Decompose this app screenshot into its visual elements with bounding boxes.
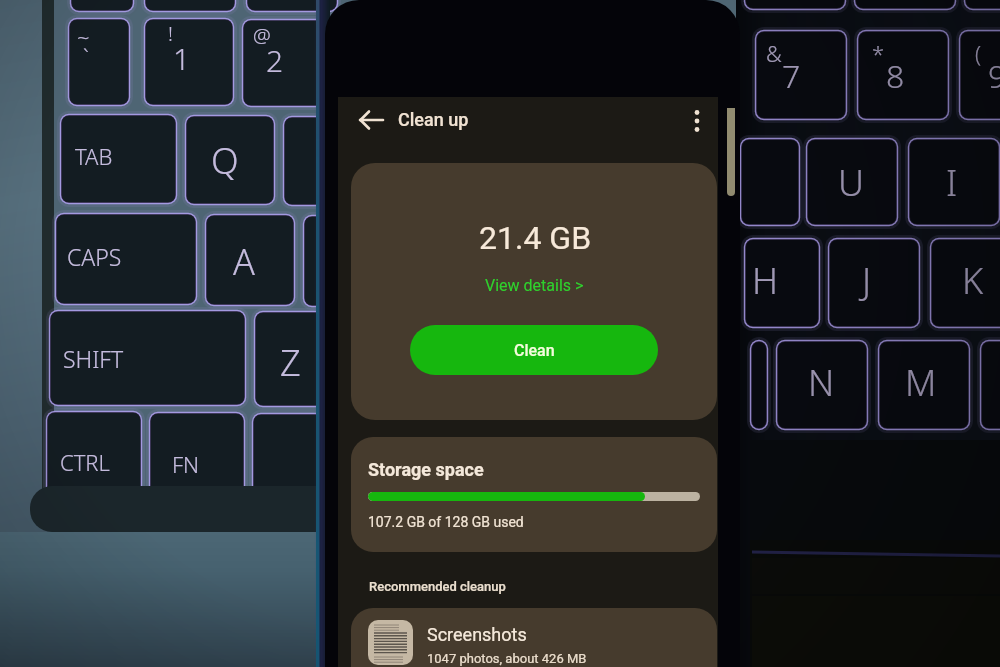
staticText: J — [862, 256, 872, 305]
staticText: ( — [975, 38, 982, 68]
staticText: TAB — [75, 141, 113, 171]
staticText: FN — [172, 449, 200, 479]
staticText: H — [752, 256, 779, 305]
staticText: View details > — [485, 276, 584, 295]
staticText: Z — [280, 338, 301, 387]
staticText: 2 — [266, 40, 284, 81]
staticText: 8 — [886, 54, 905, 98]
staticText: Clean — [514, 341, 555, 360]
button[interactable]: More options — [682, 101, 712, 141]
staticText: I — [946, 158, 958, 207]
staticText: Q — [211, 136, 239, 185]
staticText: Clean up — [398, 109, 469, 130]
staticText: & — [766, 38, 782, 68]
staticText: 107.2 GB of 128 GB used — [368, 514, 524, 530]
button[interactable]: Storage space — [351, 437, 717, 552]
staticText: 9 — [988, 54, 1000, 98]
staticText: ` — [83, 41, 89, 71]
staticText: * — [872, 38, 885, 68]
button[interactable]: Back — [359, 107, 385, 133]
staticText: 1 — [173, 38, 191, 79]
staticText: 1047 photos, about 426 MB — [427, 651, 587, 666]
staticText: 21.4 GB — [479, 219, 592, 257]
staticText: Recommended cleanup — [369, 579, 506, 594]
button[interactable]: Screenshots — [351, 608, 717, 667]
staticText: N — [808, 358, 835, 407]
staticText: Screenshots — [427, 624, 527, 645]
staticText: M — [905, 358, 937, 407]
staticText: ~ — [77, 22, 90, 52]
staticText: @ — [253, 22, 271, 49]
staticText: K — [962, 256, 984, 305]
staticText: U — [838, 158, 864, 207]
button[interactable]: Clean — [410, 325, 658, 375]
staticText: CAPS — [67, 241, 122, 272]
staticText: SHIFT — [63, 343, 124, 374]
button[interactable]: 21.4 GB — [351, 163, 717, 420]
other: Power button — [727, 108, 735, 196]
staticText: ! — [168, 20, 173, 47]
staticText: 7 — [782, 54, 801, 98]
staticText: CTRL — [60, 447, 110, 477]
staticText: Storage space — [368, 459, 484, 480]
staticText: A — [233, 237, 255, 286]
